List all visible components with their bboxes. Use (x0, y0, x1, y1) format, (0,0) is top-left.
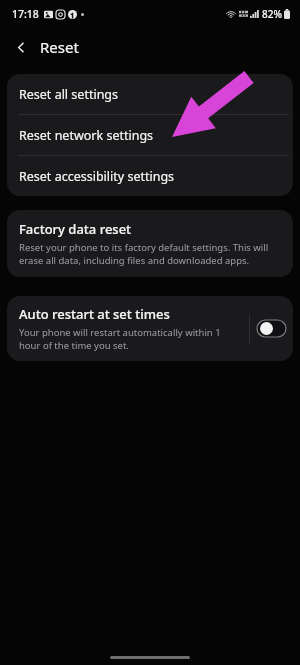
staticText: Reset (40, 37, 79, 57)
button[interactable]: Auto restart toggle (257, 320, 286, 337)
staticText: 82% (262, 7, 282, 21)
button[interactable]: Back (8, 34, 34, 60)
button[interactable]: Factory data reset (7, 210, 293, 277)
staticText: Reset accessibility settings (19, 168, 175, 185)
staticText: Factory data reset (19, 220, 132, 238)
staticText: Reset network settings (19, 127, 154, 144)
button[interactable]: Reset accessibility settings (7, 156, 293, 196)
staticText: Reset all settings (19, 86, 119, 103)
button[interactable]: Reset all settings (7, 74, 293, 114)
staticText: 17:18 (12, 7, 39, 21)
staticText: Your phone will restart automatically wi… (19, 326, 241, 352)
staticText: Auto restart at set times (19, 305, 170, 323)
staticText: Reset your phone to its factory default … (19, 241, 281, 267)
button[interactable]: Auto restart at set times (7, 296, 249, 361)
button[interactable]: Reset network settings (7, 115, 293, 155)
